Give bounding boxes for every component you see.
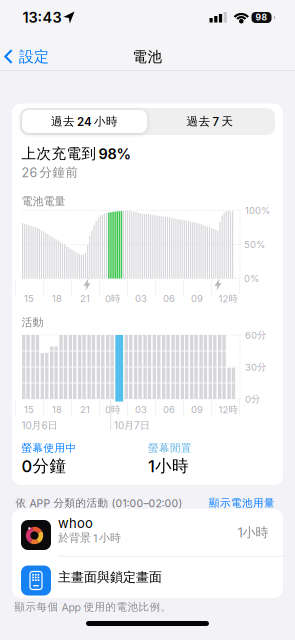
button[interactable]: 返回設定 (2, 42, 56, 72)
staticText: 30分 (245, 361, 267, 373)
staticText: 10月6日 (21, 419, 57, 432)
staticText: 15 (24, 293, 34, 304)
staticText: 26 分鐘前 (21, 164, 78, 180)
staticText: 0分鐘 (21, 455, 66, 476)
staticText: 0時 (105, 403, 121, 415)
staticText: whoo (58, 515, 93, 531)
button[interactable]: 過去 7 天 (147, 110, 273, 133)
staticText: 螢幕閒置 (148, 441, 192, 455)
staticText: 設定 (19, 47, 49, 66)
staticText: 21 (80, 404, 90, 415)
staticText: 21 (80, 293, 90, 304)
staticText: 上次充電到 98% (21, 144, 131, 163)
staticText: 03 (135, 404, 147, 415)
staticText: 12時 (218, 292, 238, 304)
staticText: 15 (24, 404, 34, 415)
staticText: 12時 (218, 403, 238, 415)
staticText: 50% (244, 239, 265, 250)
staticText: 18 (52, 293, 62, 304)
staticText: 電池電量 (21, 194, 65, 208)
staticText: 0分 (245, 393, 261, 405)
staticText: 主畫面與鎖定畫面 (58, 569, 162, 585)
staticText: 顯示電池用量 (209, 496, 275, 510)
staticText: 09 (191, 404, 203, 415)
staticText: 100% (245, 205, 270, 216)
staticText: 09 (191, 293, 203, 304)
staticText: 03 (135, 293, 147, 304)
staticText: 過去 7 天 (186, 114, 233, 129)
staticText: 60分 (245, 329, 267, 341)
staticText: 1小時 (237, 524, 268, 541)
staticText: 活動 (21, 315, 43, 329)
button[interactable]: 過去 24 小時 (22, 110, 147, 133)
staticText: 0時 (105, 292, 121, 304)
staticText: 06 (163, 404, 175, 415)
staticText: 顯示每個 App 使用的電池比例。 (14, 600, 171, 614)
staticText: 06 (163, 293, 175, 304)
staticText: 0% (244, 273, 259, 284)
staticText: 依 APP 分類的活動 (01:00–02:00) (15, 496, 182, 510)
staticText: 螢幕使用中 (21, 441, 76, 455)
staticText: 10月7日 (114, 419, 150, 432)
staticText: 18 (52, 404, 62, 415)
staticText: 13:43 (22, 9, 61, 26)
staticText: 電池 (132, 48, 162, 66)
staticText: 過去 24 小時 (51, 114, 118, 129)
staticText: 1小時 (148, 455, 189, 476)
button[interactable]: whoo，於背景1小時，1小時 (12, 509, 283, 556)
button[interactable]: 顯示電池用量 (209, 496, 275, 510)
staticText: 98 (255, 12, 267, 23)
button[interactable]: 主畫面與鎖定畫面 (12, 556, 283, 598)
staticText: 於背景 1 小時 (58, 531, 121, 545)
